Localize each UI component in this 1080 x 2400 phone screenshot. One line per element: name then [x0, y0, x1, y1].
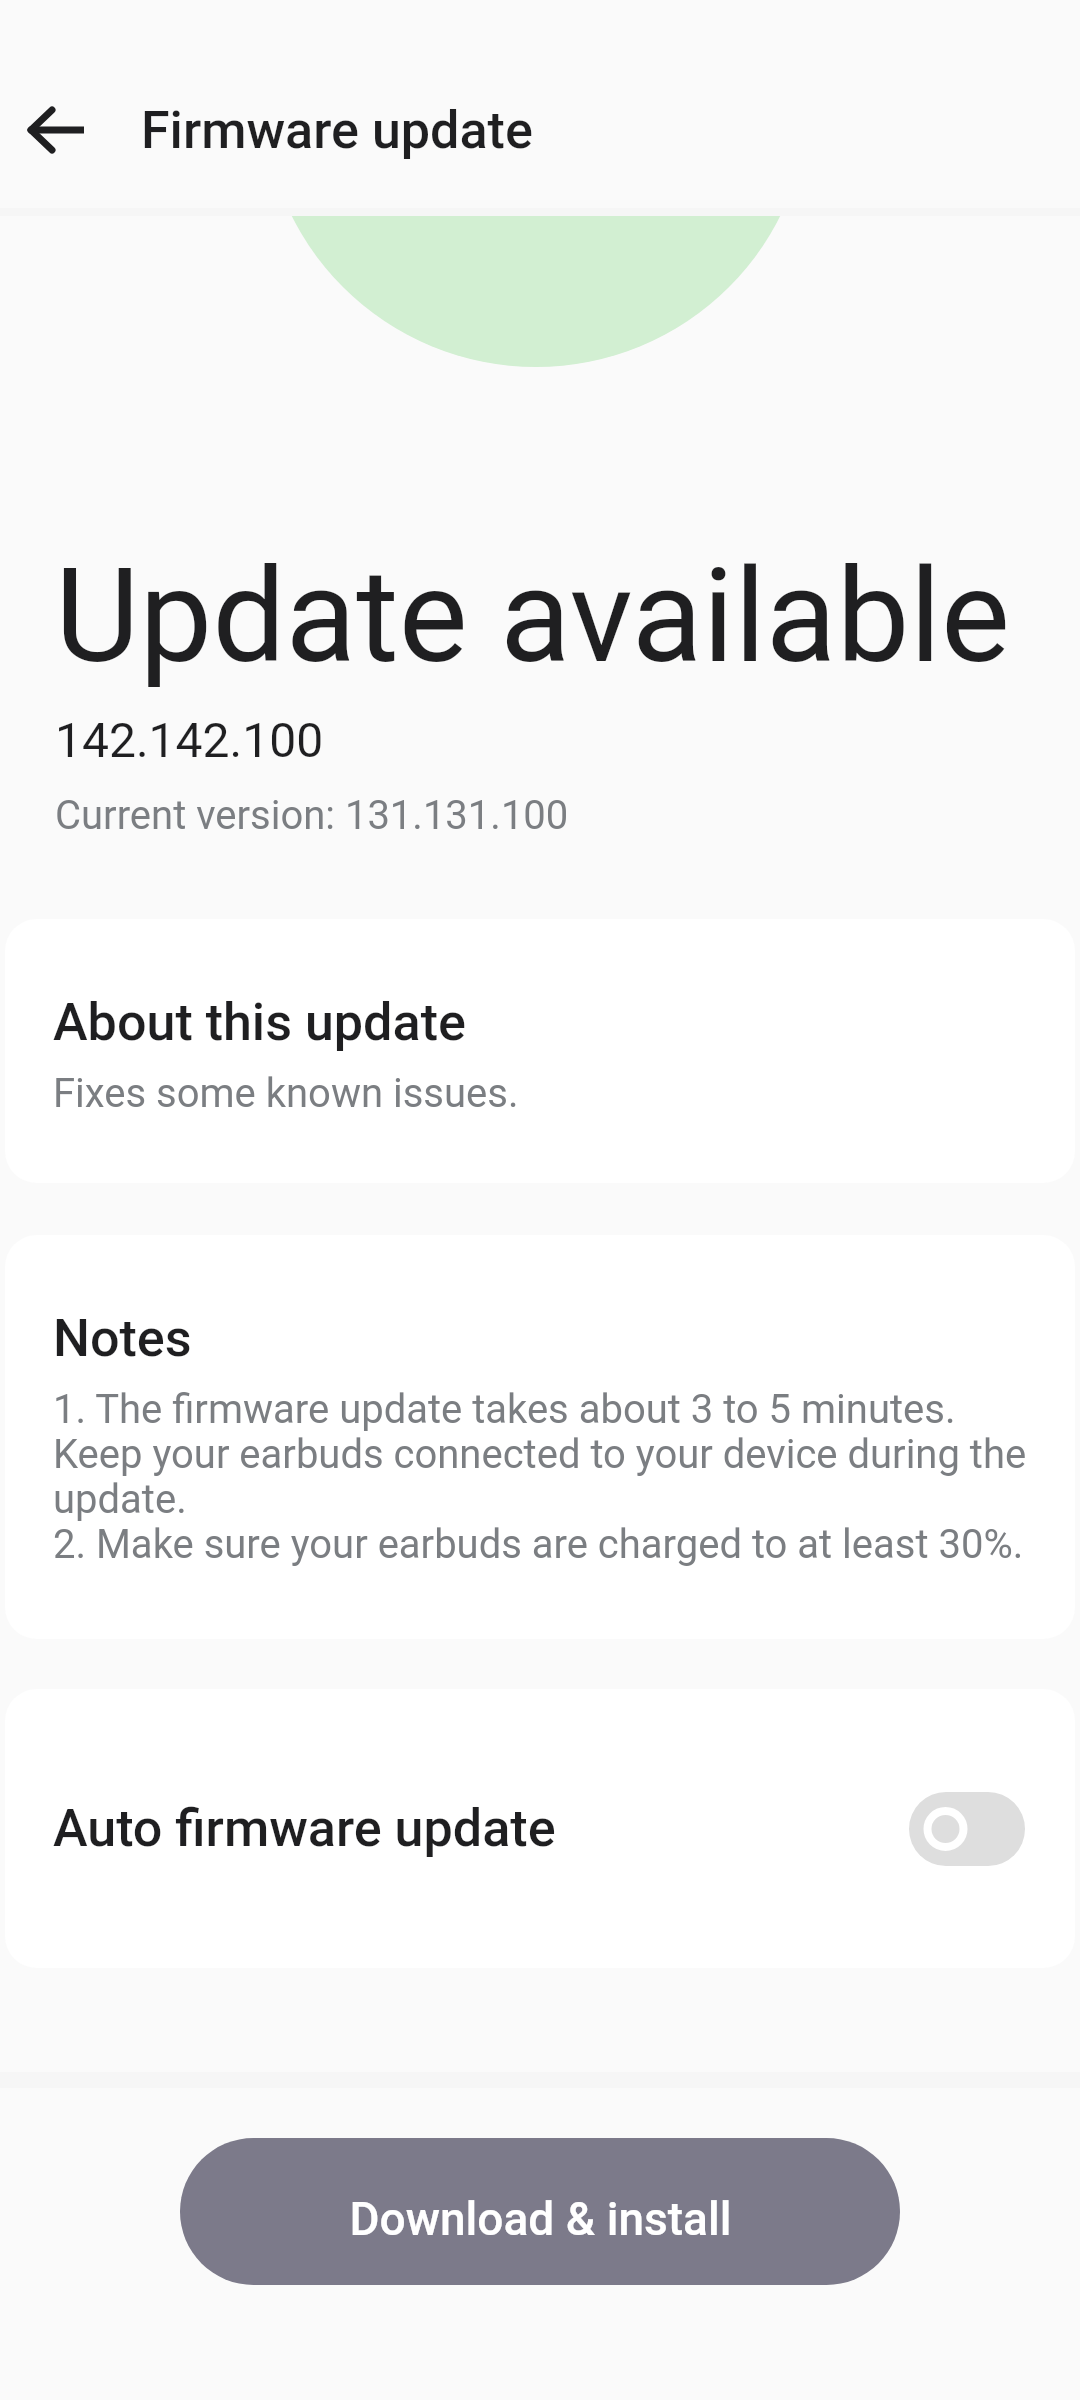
staticText: Current version: 131.131.100 — [55, 792, 569, 839]
button[interactable]: Back — [8, 78, 112, 182]
staticText: Notes — [53, 1308, 192, 1369]
button[interactable]: Auto firmware update — [5, 1689, 1075, 1968]
button[interactable]: Notes — [5, 1235, 1075, 1639]
staticText: Firmware update — [141, 100, 533, 161]
button[interactable]: About this update — [5, 919, 1075, 1183]
button[interactable]: Download & install — [180, 2138, 900, 2285]
staticText: About this update — [53, 992, 466, 1053]
staticText: 142.142.100 — [55, 712, 324, 768]
staticText: 1. The firmware update takes about 3 to … — [53, 1386, 1041, 1567]
staticText: Fixes some known issues. — [53, 1070, 519, 1117]
staticText: Download & install — [349, 2192, 732, 2246]
staticText: Auto firmware update — [53, 1798, 909, 1859]
staticText: Update available — [55, 540, 1011, 692]
button[interactable]: Auto firmware update toggle — [909, 1792, 1025, 1866]
